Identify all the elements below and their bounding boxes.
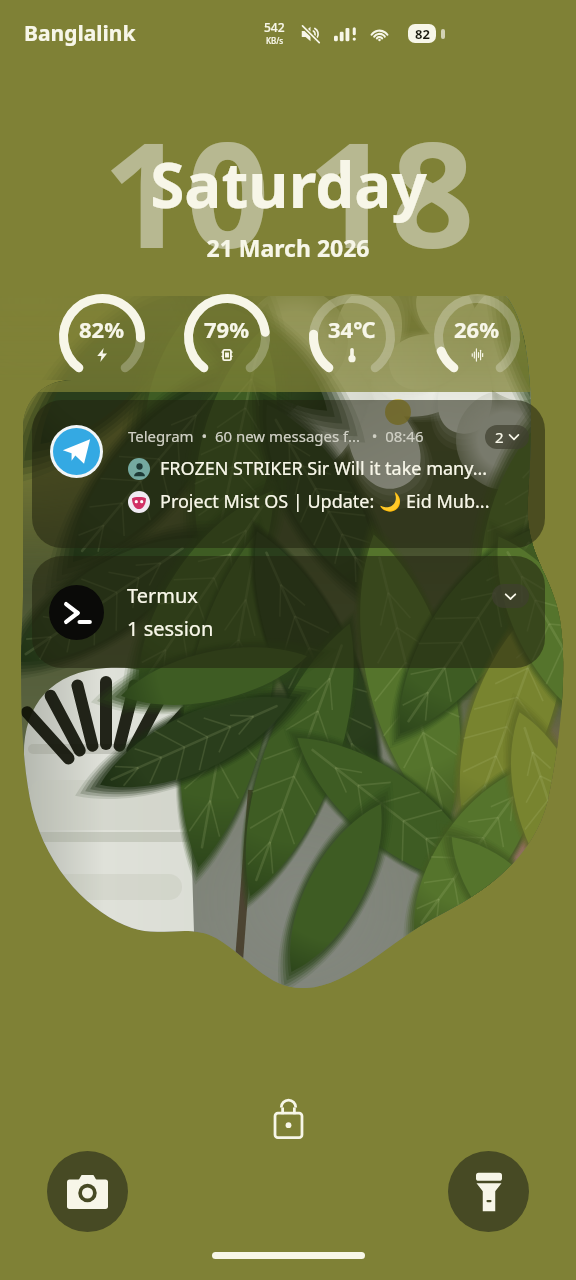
- staticText: Banglalink: [24, 19, 136, 48]
- staticText: 79%: [204, 314, 250, 344]
- button[interactable]: 2: [485, 425, 529, 449]
- staticText: Project Mist OS | Update: 🌙 Eid Mub...: [160, 489, 490, 514]
- staticText: 2: [495, 427, 504, 447]
- button[interactable]: Unlock: [260, 1090, 316, 1146]
- staticText: 26%: [454, 314, 500, 344]
- staticText: 82%: [79, 314, 125, 344]
- staticText: 82: [415, 25, 430, 43]
- button[interactable]: Camera: [47, 1151, 128, 1232]
- staticText: 1 session: [127, 615, 214, 642]
- staticText: Saturday: [150, 142, 427, 226]
- button[interactable]: Expand notification: [492, 584, 529, 608]
- staticText: 542: [264, 19, 285, 35]
- staticText: FROZEN STRIKER Sir Will it take many...: [160, 456, 488, 481]
- button[interactable]: Telegram • 60 new messages f... • 08:46: [32, 400, 545, 548]
- staticText: 10 18: [102, 92, 475, 291]
- staticText: Termux: [127, 582, 198, 609]
- button[interactable]: Flashlight: [448, 1151, 529, 1232]
- staticText: Telegram • 60 new messages f... • 08:46: [128, 426, 424, 446]
- staticText: 21 March 2026: [206, 232, 370, 263]
- staticText: KB/s: [266, 35, 284, 46]
- staticText: 34℃: [328, 314, 376, 344]
- button[interactable]: Termux: [32, 556, 545, 668]
